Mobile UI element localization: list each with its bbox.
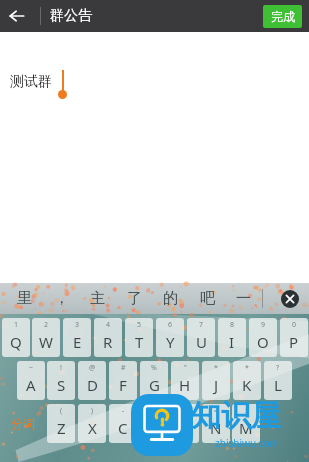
button[interactable]: 8 [218,318,246,357]
button[interactable]: ( [47,404,75,443]
button[interactable]: % [140,361,168,400]
staticText: ? [276,363,280,373]
staticText: C [118,418,128,438]
button[interactable]: 里 [12,287,36,310]
staticText: 一 [236,289,251,308]
button[interactable]: # [109,361,137,400]
staticText: J [214,375,219,395]
staticText: 完成 [271,9,295,24]
staticText: N [210,418,222,438]
staticText: 4 [106,320,111,330]
staticText: H [179,375,191,395]
button[interactable]: ) [78,404,106,443]
button[interactable]: ! [47,361,75,400]
staticText: L [274,375,282,395]
staticText: # [121,363,126,373]
staticText: G [149,375,160,395]
staticText: T [135,332,144,352]
button[interactable]: : [232,404,260,443]
button[interactable]: + [171,404,199,443]
button[interactable]: * [233,361,261,400]
staticText: V [149,418,159,438]
button[interactable]: 了 [122,287,146,310]
staticText: U [196,332,207,352]
staticText: 主 [90,289,105,308]
staticText: 群公告 [50,7,92,25]
button[interactable]: ~ [17,361,45,400]
staticText: P [289,332,299,352]
staticText: E [73,332,82,352]
staticText: ， [54,289,69,308]
staticText: Y [166,332,175,352]
staticText: 6 [168,320,173,330]
staticText: X [88,418,97,438]
button[interactable]: 主 [85,287,109,310]
button[interactable]: = [202,404,230,443]
staticText: I [229,332,235,352]
button[interactable]: 完成 [263,5,302,28]
staticText: ! [60,363,62,373]
staticText: Q [10,332,22,352]
staticText: 1 [14,320,19,330]
staticText: 吧 [200,289,215,308]
button[interactable]: Close keyboard candidates [281,290,299,308]
button[interactable]: 9 [249,318,277,357]
staticText: 2 [44,320,49,330]
staticText: 里 [17,289,32,308]
staticText: : [245,406,247,416]
staticText: - [122,406,125,416]
staticText: 的 [163,289,178,308]
button[interactable]: 2 [32,318,60,357]
staticText: @ [89,363,96,373]
staticText: K [242,375,252,395]
staticText: W [39,332,53,352]
staticText: Z [57,418,66,438]
staticText: 5 [137,320,142,330]
button[interactable]: 0 [280,318,308,357]
staticText: ) [91,406,94,416]
button[interactable]: 7 [187,318,215,357]
staticText: 8 [230,320,235,330]
staticText: ( [60,406,63,416]
button[interactable]: 分词 [2,404,44,443]
staticText: _ [152,406,156,416]
button[interactable]: @ [78,361,106,400]
button[interactable]: 4 [94,318,122,357]
staticText: O [257,332,269,352]
staticText: 测试群 [10,73,52,91]
button[interactable]: 6 [156,318,184,357]
button[interactable]: - [109,404,137,443]
button[interactable]: 1 [2,318,30,357]
staticText: * [245,363,249,373]
staticText: % [151,363,157,373]
staticText: D [87,375,98,395]
staticText: 了 [127,289,142,308]
staticText: 3 [75,320,80,330]
staticText: 分词 [11,416,35,431]
staticText: 0 [292,320,297,330]
staticText: zhishiwu.com [191,436,303,450]
button[interactable]: 5 [125,318,153,357]
button[interactable]: 3 [63,318,91,357]
staticText: M [239,418,253,438]
staticText: ~ [29,363,34,373]
staticText: " [184,363,187,373]
button[interactable]: ， [49,287,73,310]
button[interactable]: 吧 [195,287,219,310]
staticText: 7 [199,320,204,330]
staticText: S [57,375,66,395]
staticText: F [119,375,127,395]
button[interactable]: * [202,361,230,400]
staticText: 9 [261,320,266,330]
button[interactable]: Back [0,0,34,32]
button[interactable]: " [171,361,199,400]
button[interactable]: _ [140,404,168,443]
button[interactable]: 测试群 [0,32,309,283]
button[interactable]: ? [264,361,292,400]
staticText: A [26,375,36,395]
button[interactable]: 一 [231,287,255,310]
staticText: = [214,406,219,416]
button[interactable]: 的 [158,287,182,310]
staticText: R [103,332,113,352]
